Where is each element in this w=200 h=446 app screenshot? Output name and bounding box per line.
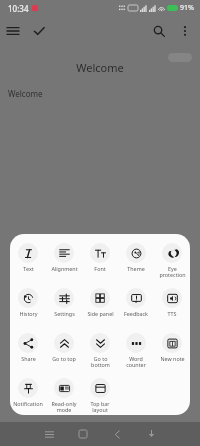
button[interactable]: Word counter (118, 330, 154, 374)
button[interactable]: Back (108, 425, 126, 443)
staticText: Welcome (0, 60, 200, 75)
button[interactable]: TTS (154, 285, 190, 329)
button[interactable]: Notification (10, 375, 46, 415)
button[interactable]: Side panel (82, 285, 118, 329)
button[interactable]: Feedback (118, 285, 154, 329)
staticText: History (19, 310, 38, 317)
staticText: New note (160, 355, 185, 362)
button[interactable]: Share (10, 330, 46, 374)
staticText: Settings (54, 310, 75, 317)
staticText: Go to top (52, 355, 76, 362)
staticText: Theme (127, 265, 145, 272)
button[interactable]: Download (142, 425, 160, 443)
button[interactable]: Recents (40, 425, 58, 443)
button[interactable]: Alignment (46, 240, 82, 284)
staticText: Go to bottom (91, 355, 110, 369)
staticText: Notification (13, 400, 43, 407)
button[interactable]: Eye protection (154, 240, 190, 284)
staticText: TTS (167, 310, 177, 317)
staticText: Alignment (51, 265, 78, 272)
button[interactable]: Search (146, 18, 172, 44)
staticText: 10:34 (8, 3, 29, 14)
button[interactable]: Read-only mode (46, 375, 82, 415)
button[interactable]: Home (74, 425, 92, 443)
staticText: Text (23, 265, 34, 272)
staticText: Read-only mode (51, 400, 77, 414)
button[interactable]: New note (154, 330, 190, 374)
button[interactable]: Text (10, 240, 46, 284)
staticText: Word counter (126, 355, 146, 369)
button[interactable]: Done (26, 18, 52, 44)
staticText: 91% (180, 3, 194, 13)
button[interactable]: Go to top (46, 330, 82, 374)
staticText: Share (21, 355, 36, 362)
staticText: Eye protection (159, 265, 186, 279)
staticText: Welcome (8, 88, 43, 99)
button[interactable]: Settings (46, 285, 82, 329)
button[interactable]: Menu (0, 18, 26, 44)
button[interactable]: Theme (118, 240, 154, 284)
staticText: Side panel (87, 310, 114, 317)
button[interactable]: History (10, 285, 46, 329)
staticText: Top bar layout (90, 400, 110, 414)
staticText: Feedback (124, 310, 148, 317)
button[interactable]: More options (172, 18, 198, 44)
button[interactable]: Top bar layout (82, 375, 118, 415)
button[interactable]: Font (82, 240, 118, 284)
staticText: Font (94, 265, 106, 272)
button[interactable]: Go to bottom (82, 330, 118, 374)
